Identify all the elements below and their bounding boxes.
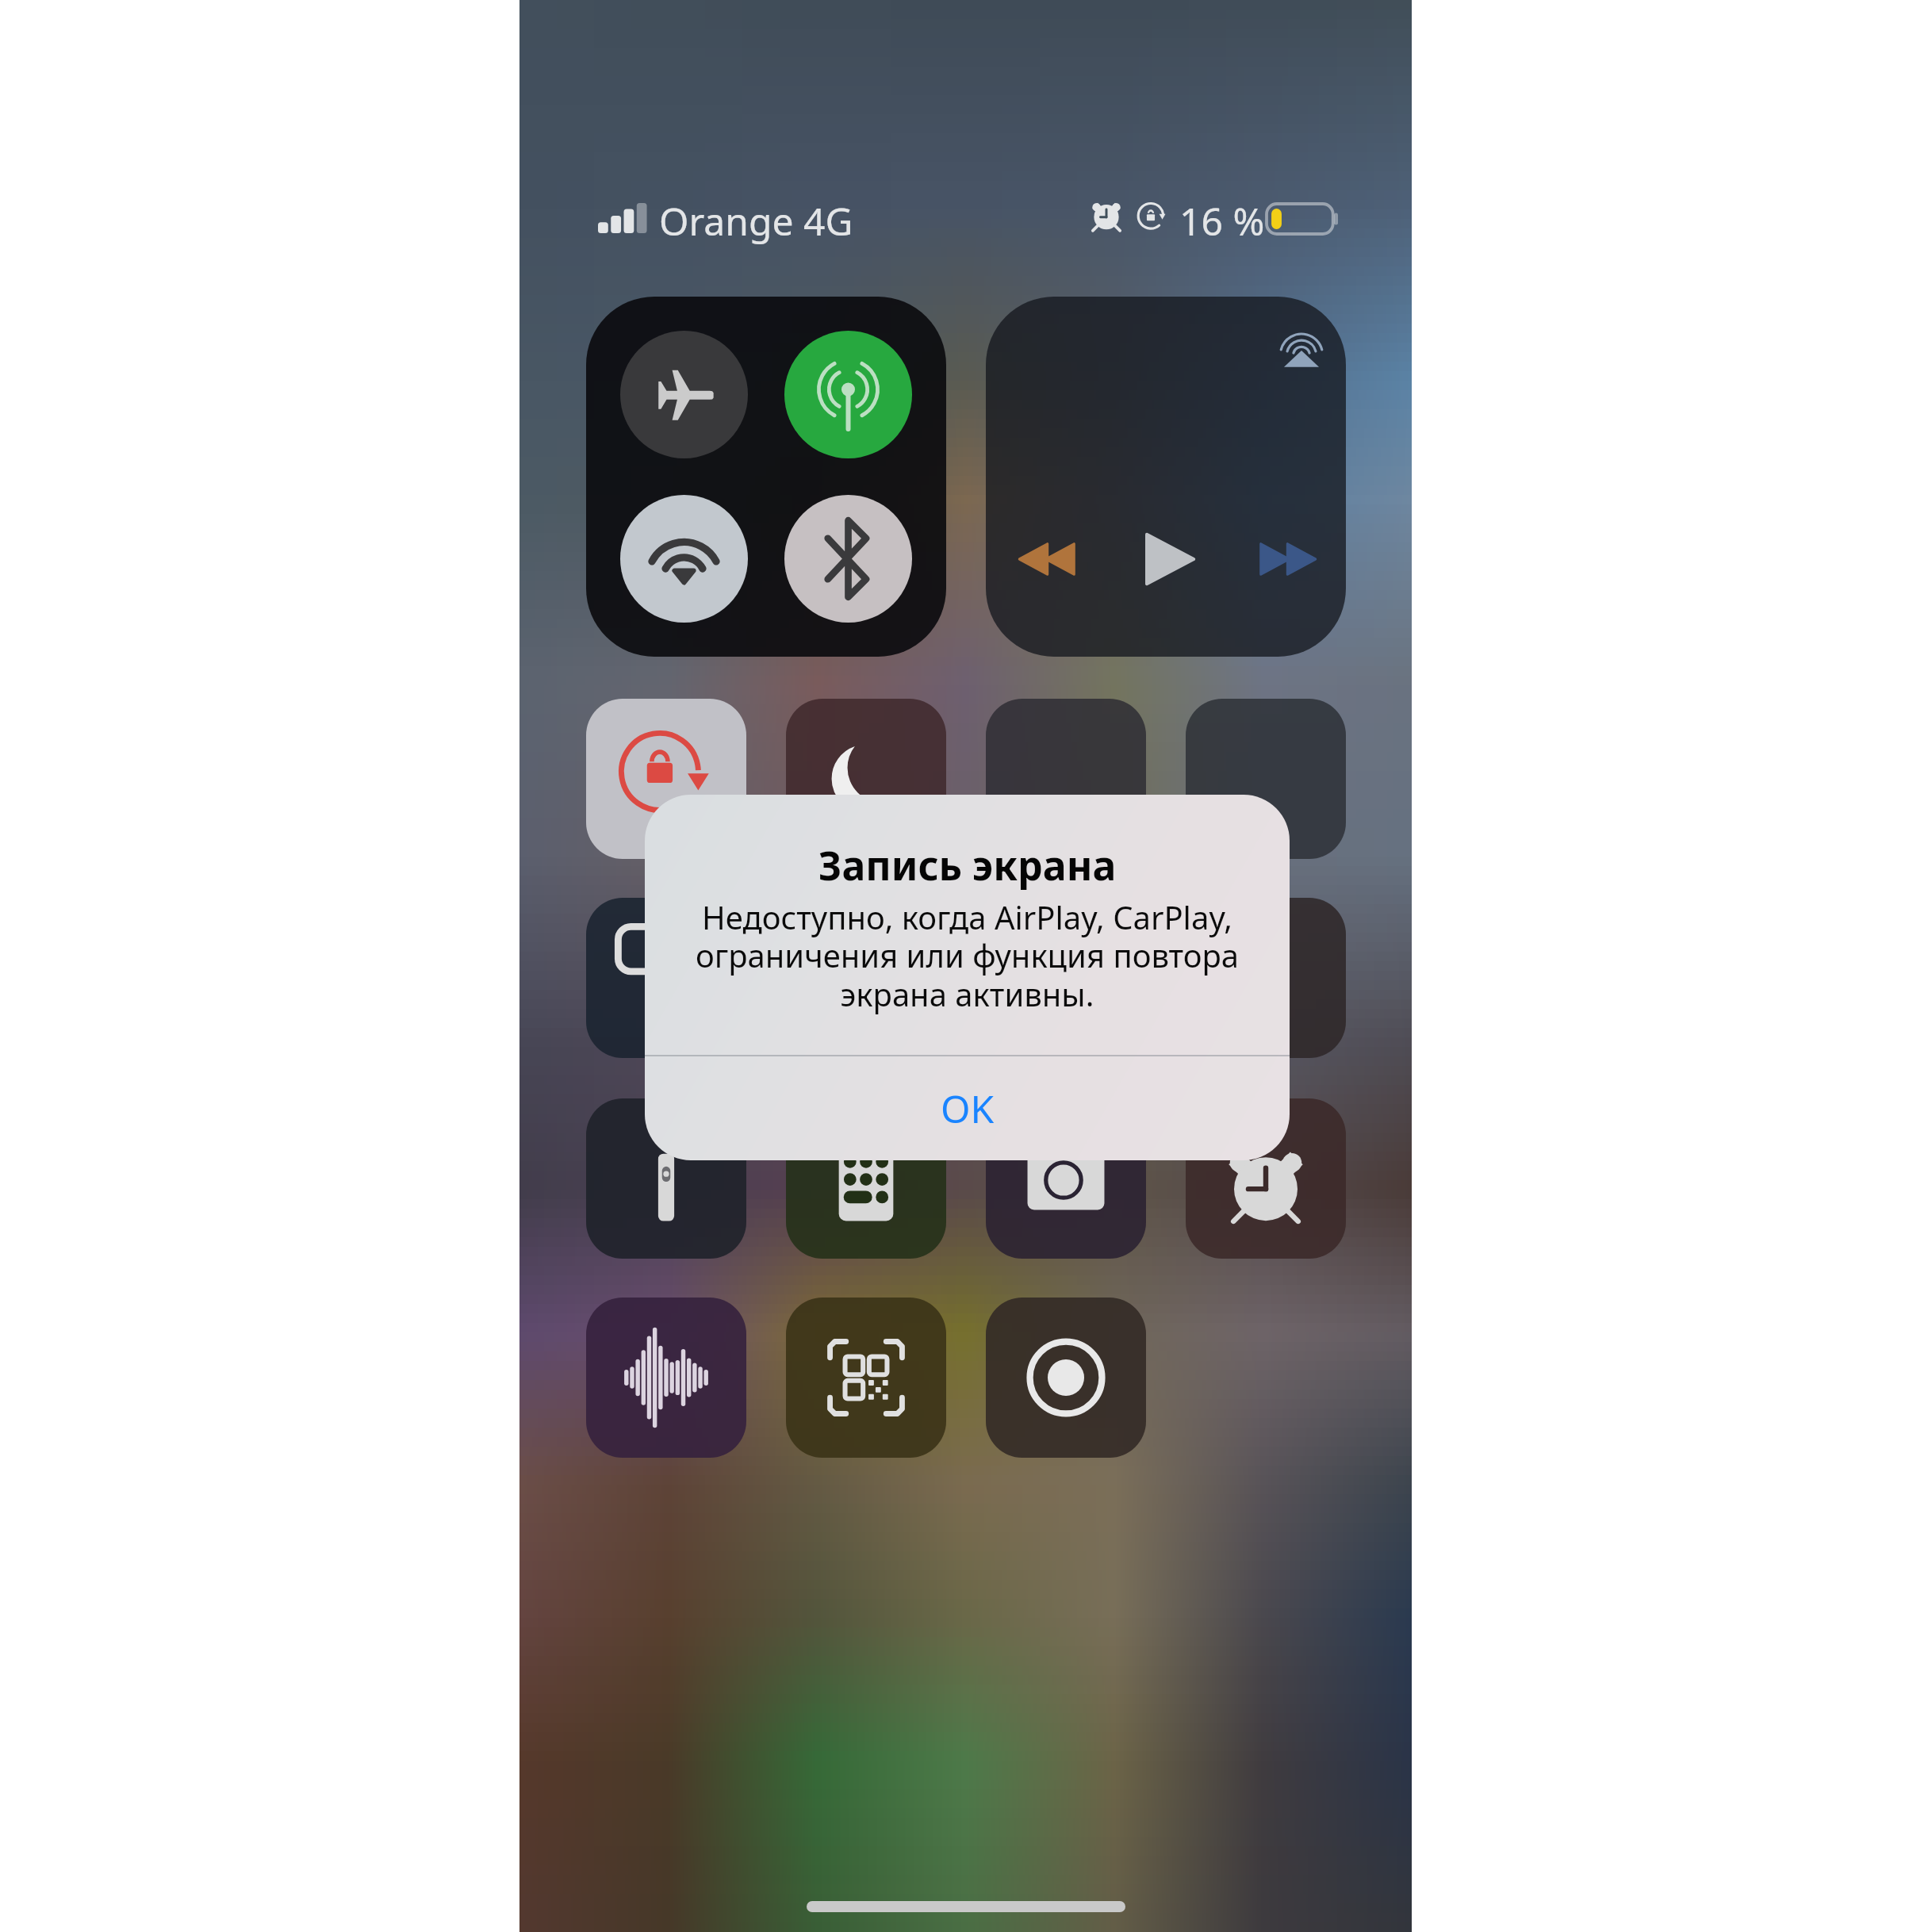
button[interactable]: AirPlay (986, 297, 1346, 657)
button[interactable]: Screen recording (986, 1298, 1146, 1458)
button[interactable]: Home indicator (807, 1901, 1125, 1912)
staticText: OK (941, 1083, 995, 1134)
button[interactable]: Wi-Fi (620, 495, 748, 623)
button[interactable]: Previous (1014, 527, 1078, 591)
button[interactable]: Play (1134, 527, 1198, 591)
button[interactable]: Voice memos (586, 1298, 746, 1458)
button[interactable]: Calculator (786, 1098, 946, 1259)
button[interactable]: Text size (786, 898, 946, 1058)
button[interactable]: Bluetooth (784, 495, 912, 623)
button[interactable]: Airplane mode (620, 331, 748, 458)
button[interactable]: Rotation lock (586, 699, 746, 859)
button[interactable]: Do not disturb (786, 699, 946, 859)
staticText: Orange 4G (659, 195, 853, 247)
staticText: Запись экрана (645, 838, 1290, 892)
button[interactable]: OK (645, 1056, 1290, 1160)
other: Alarm set (1089, 197, 1124, 232)
button[interactable]: AirPlay (1278, 322, 1324, 368)
button[interactable]: Scan QR code (786, 1298, 946, 1458)
button[interactable]: Next (1257, 527, 1321, 591)
button[interactable]: Hearing (986, 898, 1146, 1058)
button[interactable]: Mirroring (986, 699, 1146, 859)
button[interactable]: Camera (986, 1098, 1146, 1259)
button[interactable]: Flashlight (586, 1098, 746, 1259)
button[interactable]: Cellular data (784, 331, 912, 458)
button[interactable]: Focus (1186, 699, 1346, 859)
other: Rotation lock (1133, 197, 1168, 232)
staticText: 16 % (1179, 195, 1265, 247)
button[interactable]: Accessibility (1186, 898, 1346, 1058)
staticText: Недоступно, когда AirPlay, CarPlay, огра… (645, 895, 1290, 1016)
button[interactable]: Alarm (1186, 1098, 1346, 1259)
button[interactable]: Low power (586, 898, 746, 1058)
button[interactable]: Airplane mode (586, 297, 946, 657)
